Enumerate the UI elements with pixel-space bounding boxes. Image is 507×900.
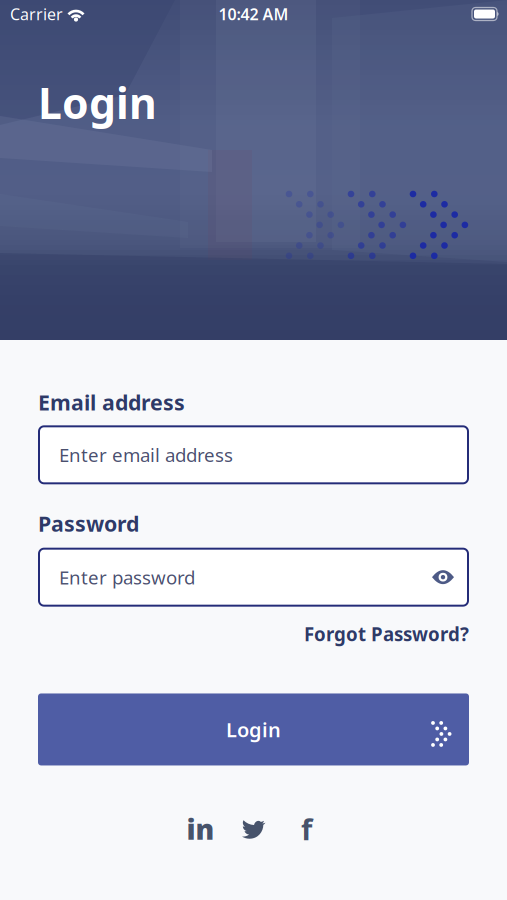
staticText: Enter email address [59,442,233,467]
staticText: Login [226,716,281,743]
button[interactable]: Sign in with LinkedIn [180,810,220,847]
button[interactable]: Sign in with Facebook [286,809,326,848]
staticText: Forgot Password? [304,622,469,646]
button[interactable]: Enter password [38,548,469,607]
button[interactable]: Forgot Password? [304,622,469,646]
staticText: in [186,810,214,847]
staticText: Carrier [10,3,63,25]
button[interactable]: Enter email address [38,425,469,484]
staticText: Enter password [59,565,195,590]
staticText: f [301,809,312,848]
staticText: Password [38,509,139,538]
button[interactable]: Sign in with Twitter [233,818,273,839]
staticText: Login [38,74,157,131]
button[interactable]: Show password [432,571,469,584]
staticText: Email address [38,388,185,416]
staticText: 10:42 AM [218,3,288,25]
button[interactable]: Login [38,693,469,765]
